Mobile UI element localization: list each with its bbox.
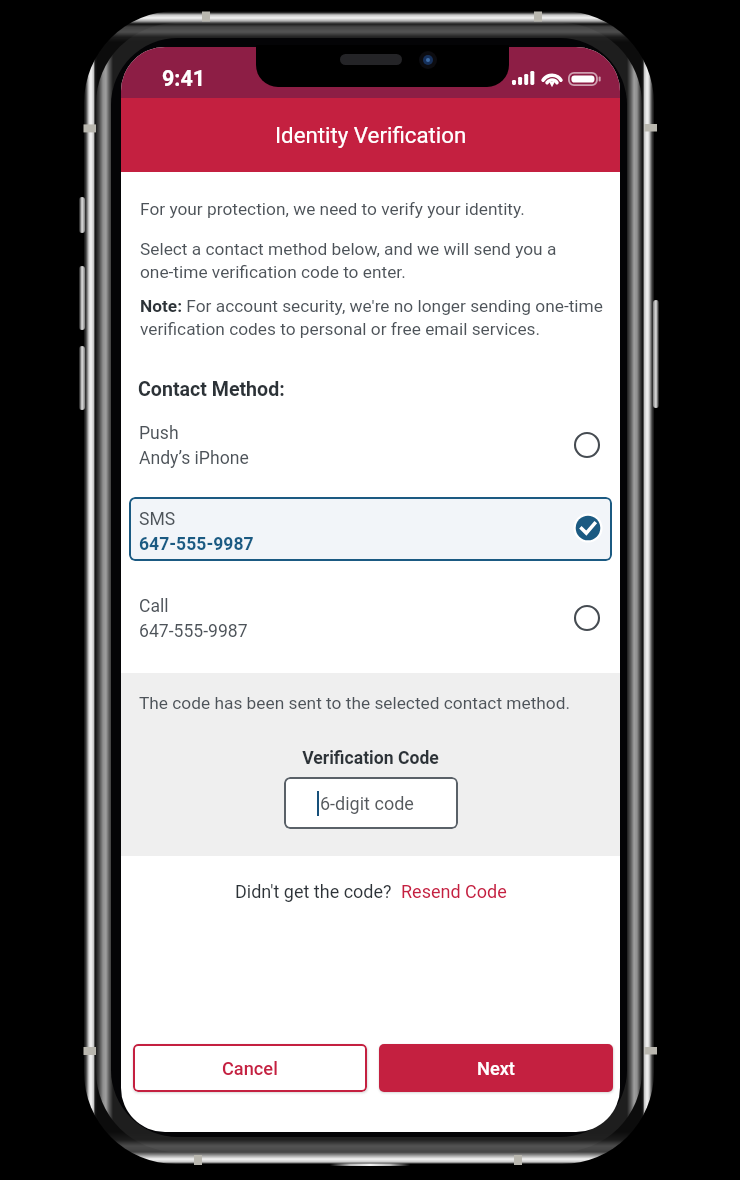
staticText: Select a contact method below, and we wi… [140,239,557,282]
other: SMS selected [575,515,601,541]
button[interactable]: Cancel [133,1044,367,1092]
staticText: Contact Method: [138,378,285,401]
button[interactable]: 6-digit code [284,777,458,829]
other: Select Push [574,432,600,458]
staticText: 6-digit code [320,793,414,814]
staticText: Next [477,1058,515,1079]
button[interactable]: Resend Code [401,881,507,902]
staticText: Note: For account security, we're no lon… [140,296,603,339]
button[interactable]: Push [121,414,620,478]
staticText: Call [139,596,169,617]
staticText: 647-555-9987 [139,621,248,642]
staticText: Resend Code [401,881,507,902]
button[interactable]: Call [121,587,620,651]
staticText: Andy’s iPhone [139,448,249,469]
staticText: Didn't get the code? [235,881,392,902]
staticText: Verification Code [121,748,620,769]
button[interactable]: Next [379,1044,613,1092]
staticText: For your protection, we need to verify y… [140,199,525,219]
button[interactable]: SMS [129,497,612,561]
staticText: The code has been sent to the selected c… [139,693,571,713]
other: Select Call [574,605,600,631]
staticText: 647-555-9987 [139,534,254,555]
staticText: Cancel [222,1058,278,1079]
staticText: Identity Verification [275,122,467,148]
staticText: SMS [139,509,176,530]
staticText: 9:41 [162,66,206,91]
staticText: Push [139,423,179,444]
